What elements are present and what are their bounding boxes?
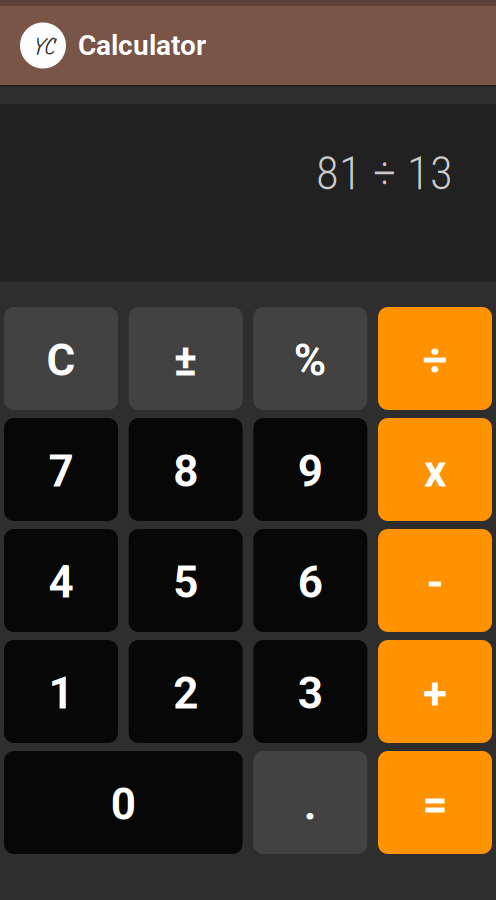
staticText: 2 [173,668,198,719]
button[interactable]: x [378,418,492,521]
staticText: YC [31,30,54,61]
staticText: 0 [111,779,136,830]
staticText: 7 [48,446,73,497]
staticText: 8 [173,446,198,497]
button[interactable]: 1 [4,640,118,743]
staticText: % [294,335,327,386]
button[interactable]: = [378,751,492,854]
staticText: 5 [173,557,198,608]
button[interactable]: 0 [4,751,243,854]
button[interactable]: 8 [129,418,243,521]
button[interactable]: - [378,529,492,632]
button[interactable]: % [253,307,367,410]
button[interactable]: ± [129,307,243,410]
staticText: C [46,335,75,386]
button[interactable]: 2 [129,640,243,743]
staticText: + [423,668,447,719]
button[interactable]: 5 [129,529,243,632]
staticText: Calculator [78,29,206,62]
staticText: = [422,779,447,830]
staticText: 4 [48,557,73,608]
staticText: x [424,446,446,497]
button[interactable]: + [378,640,492,743]
button[interactable]: 3 [253,640,367,743]
staticText: 3 [298,668,323,719]
button[interactable]: ÷ [378,307,492,410]
button[interactable]: C [4,307,118,410]
button[interactable]: 9 [253,418,367,521]
button[interactable]: Account [14,16,72,74]
button[interactable]: 4 [4,529,118,632]
staticText: ÷ [422,335,447,386]
button[interactable]: 7 [4,418,118,521]
staticText: 81 ÷ 13 [316,146,453,201]
staticText: . [304,779,317,830]
button[interactable]: . [253,751,367,854]
button[interactable]: 6 [253,529,367,632]
staticText: ± [174,335,198,386]
staticText: 1 [48,668,73,719]
staticText: 6 [298,557,323,608]
staticText: - [426,557,443,608]
staticText: 9 [298,446,323,497]
